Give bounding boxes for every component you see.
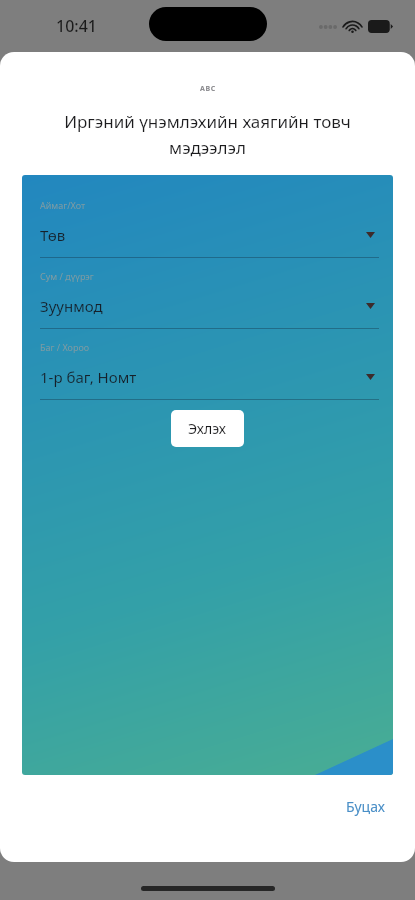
staticText: Сум / дүүрэг [40,270,94,282]
staticText: Төв [40,225,361,245]
other: Open dropdown [361,226,379,244]
staticText: Баг / Хороо [40,341,90,353]
staticText: 10:41 [56,15,97,37]
staticText: ABC [200,84,216,94]
button[interactable]: Эхлэх [171,410,244,447]
button[interactable]: Сум / дүүрэг [22,258,393,329]
other: Open dropdown [361,368,379,386]
other: Open dropdown [361,297,379,315]
staticText: Иргэний үнэмлэхийн хаягийн товч мэдээлэл [30,110,385,159]
staticText: Аймаг/Хот [40,199,86,211]
staticText: Эхлэх [188,419,227,438]
staticText: Буцах [346,797,385,816]
button[interactable]: Баг / Хороо [22,329,393,400]
button[interactable]: Буцах [340,793,391,820]
button[interactable]: Аймаг/Хот [22,187,393,258]
staticText: 1-р баг, Номт [40,367,361,387]
staticText: Зуунмод [40,296,361,316]
